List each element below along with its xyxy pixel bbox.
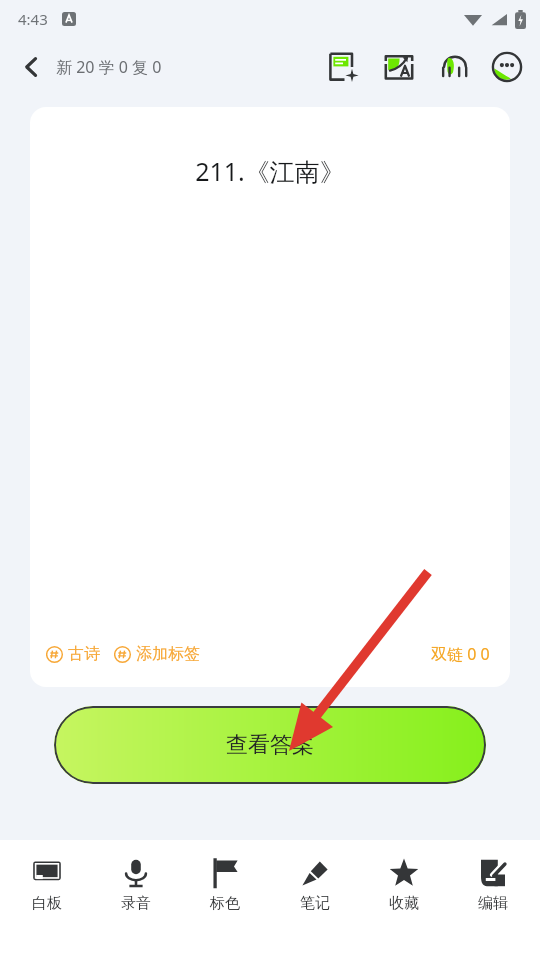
button[interactable]: 双链 0 0 — [427, 639, 494, 669]
button[interactable]: 白板 — [5, 854, 89, 917]
button[interactable]: 古诗 — [46, 641, 100, 667]
staticText: 白板 — [32, 894, 62, 913]
button[interactable]: 笔记 — [273, 854, 357, 917]
staticText: 收藏 — [389, 894, 419, 913]
button[interactable]: More options — [484, 44, 530, 90]
button[interactable]: 查看答案 — [54, 706, 486, 784]
button[interactable]: Listen — [432, 44, 478, 90]
button[interactable]: 编辑 — [451, 854, 535, 917]
staticText: 录音 — [121, 894, 151, 913]
button[interactable]: 收藏 — [362, 854, 446, 917]
staticText: 查看答案 — [226, 731, 314, 759]
button[interactable]: Translate — [376, 44, 422, 90]
staticText: 笔记 — [300, 894, 330, 913]
button[interactable]: Back — [10, 45, 54, 89]
button[interactable]: 新 20 学 0 复 0 — [54, 50, 168, 84]
button[interactable]: 211.《江南》 — [30, 107, 510, 687]
staticText: 双链 0 0 — [431, 643, 490, 665]
button[interactable]: 标色 — [183, 854, 267, 917]
staticText: 标色 — [210, 894, 240, 913]
staticText: 新 20 学 0 复 0 — [56, 56, 162, 78]
button[interactable]: 添加标签 — [114, 641, 200, 667]
button[interactable]: 录音 — [94, 854, 178, 917]
staticText: 古诗 — [68, 644, 100, 664]
staticText: 4:43 — [18, 9, 48, 29]
staticText: 添加标签 — [136, 644, 200, 664]
staticText: 211.《江南》 — [195, 154, 345, 188]
button[interactable]: AI note — [320, 44, 366, 90]
staticText: 编辑 — [478, 894, 508, 913]
